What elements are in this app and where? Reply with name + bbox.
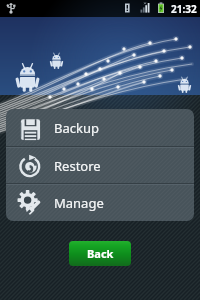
staticText: Back — [87, 246, 114, 261]
staticText: 21:32 — [171, 2, 197, 16]
staticText: Backup — [54, 119, 99, 137]
staticText: Manage — [54, 194, 104, 212]
button[interactable]: Restore — [6, 148, 194, 183]
button[interactable]: Manage — [6, 185, 194, 221]
button[interactable]: Backup — [6, 109, 194, 146]
button[interactable]: Back — [69, 241, 131, 266]
staticText: Restore — [54, 157, 101, 175]
